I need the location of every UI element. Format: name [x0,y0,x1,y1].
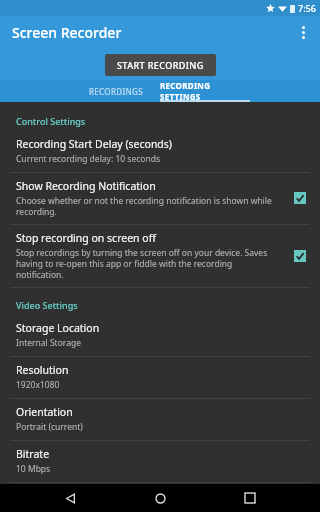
button[interactable]: RECORDINGS [72,80,160,102]
staticText: RECORDINGS [89,86,143,97]
staticText: 10 Mbps [16,463,51,475]
staticText: Show Recording Notification [16,179,156,193]
button[interactable]: Orientation [0,399,320,440]
staticText: Current recording delay: 10 seconds [16,153,160,165]
staticText: Recording Start Delay (seconds) [16,137,173,151]
button[interactable]: More options [287,16,320,49]
staticText: Internal Storage [16,337,81,349]
staticText: 1920x1080 [16,379,60,391]
staticText: Portrait (current) [16,421,83,433]
staticText: Screen Recorder [12,23,122,42]
button[interactable]: Bitrate [0,441,320,482]
staticText: RECORDING SETTINGS [160,80,250,102]
button[interactable]: Show Recording Notification [0,173,320,224]
staticText: Orientation [16,405,73,419]
staticText: Choose whether or not the recording noti… [16,195,282,217]
button[interactable]: START RECORDING [105,54,216,76]
staticText: Video Settings [16,299,78,311]
staticText: Bitrate [16,447,50,461]
button[interactable]: Recents [230,484,270,512]
button[interactable]: Recording Start Delay (seconds) [0,131,320,172]
button[interactable]: Checked [290,246,310,266]
button[interactable]: Home [140,484,180,512]
staticText: Storage Location [16,321,100,335]
button[interactable]: Storage Location [0,315,320,356]
button[interactable]: Stop recording on screen off [0,225,320,287]
staticText: Stop recordings by turning the screen of… [16,247,282,280]
button[interactable]: Checked [290,188,310,208]
staticText: Resolution [16,363,69,377]
staticText: Stop recording on screen off [16,231,156,245]
button[interactable]: Back [50,484,90,512]
staticText: START RECORDING [117,59,204,71]
staticText: 7:56 [298,2,316,14]
staticText: Control Settings [16,115,86,127]
button[interactable]: RECORDING SETTINGS [160,80,250,102]
button[interactable]: Resolution [0,357,320,398]
